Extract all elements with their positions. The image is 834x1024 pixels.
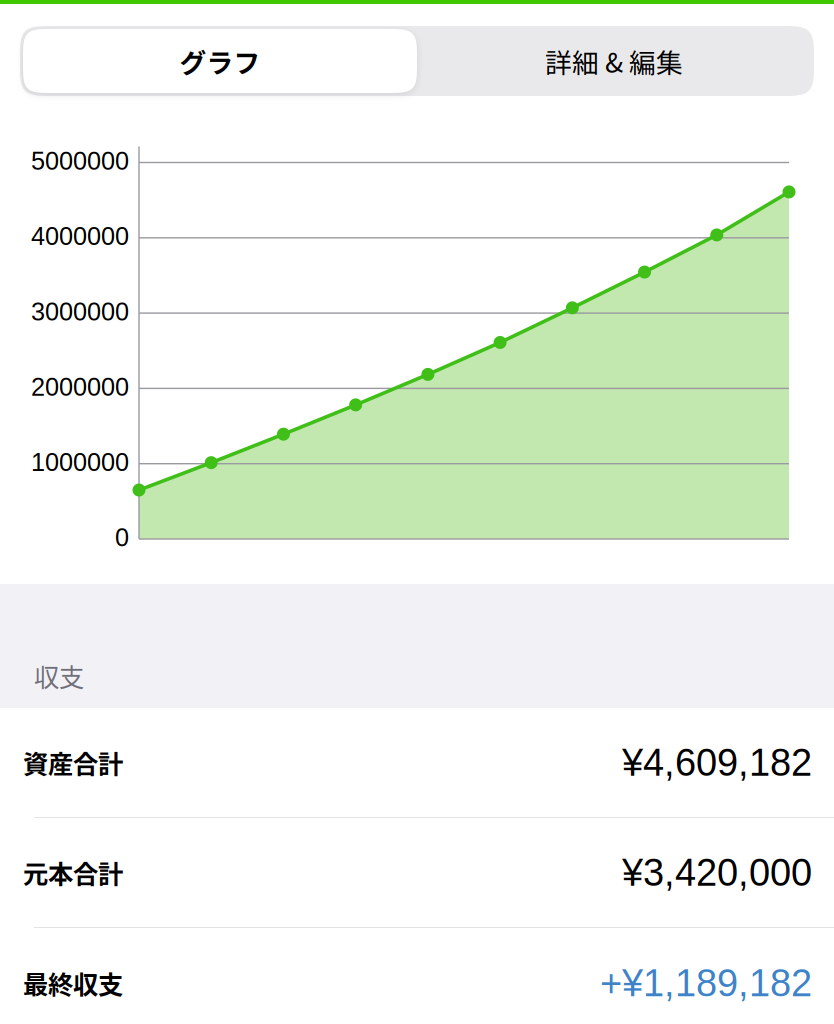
staticText: グラフ xyxy=(179,42,260,80)
staticText: ¥3,420,000 xyxy=(622,851,812,894)
button[interactable]: 元本合計 xyxy=(0,818,834,928)
button[interactable]: 資産合計 xyxy=(0,708,834,818)
staticText: ¥4,609,182 xyxy=(622,741,812,784)
staticText: 3000000 xyxy=(31,297,129,326)
staticText: 2000000 xyxy=(31,373,129,401)
button[interactable]: グラフ xyxy=(23,29,417,93)
staticText: 最終収支 xyxy=(23,965,123,1001)
staticText: 4000000 xyxy=(31,222,129,250)
button[interactable]: 詳細 & 編集 xyxy=(417,29,811,93)
staticText: +¥1,189,182 xyxy=(600,962,812,1004)
button[interactable]: 最終収支 xyxy=(0,928,834,1024)
staticText: 収支 xyxy=(34,657,84,694)
staticText: 元本合計 xyxy=(23,854,123,891)
staticText: 5000000 xyxy=(31,147,129,175)
staticText: 資産合計 xyxy=(23,744,123,781)
staticText: 1000000 xyxy=(31,448,129,476)
staticText: 0 xyxy=(115,523,129,552)
staticText: 詳細 & 編集 xyxy=(545,42,683,80)
